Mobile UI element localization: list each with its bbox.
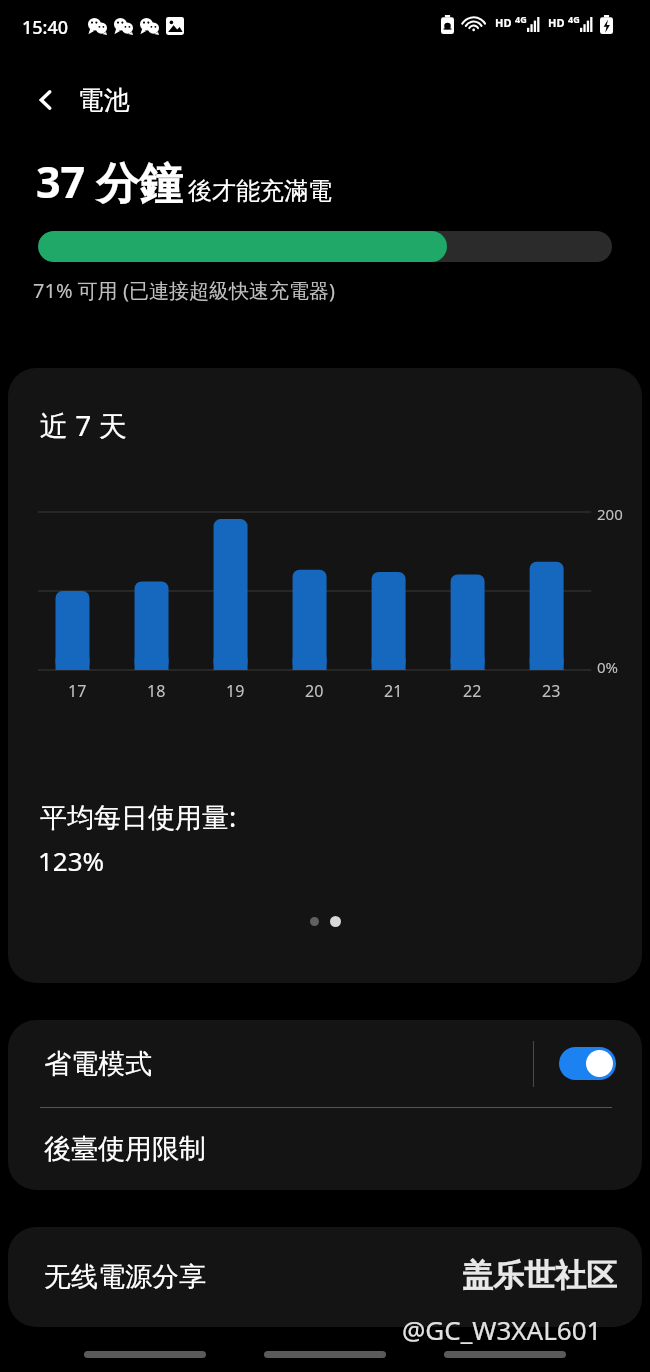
button[interactable]: 省電模式	[559, 1047, 616, 1080]
staticText: 0%	[597, 657, 619, 677]
button[interactable]: Back	[444, 1351, 566, 1358]
button[interactable]	[310, 917, 319, 926]
staticText: 18	[147, 680, 166, 702]
button[interactable]: 省電模式	[8, 1020, 642, 1107]
staticText: 20	[305, 680, 324, 702]
staticText: HD	[495, 15, 512, 30]
staticText: 4G	[568, 13, 580, 25]
staticText: 後才能充滿電	[188, 176, 332, 206]
staticText: 37 分鐘	[36, 152, 183, 211]
button[interactable]: Back	[24, 78, 68, 122]
staticText: 15:40	[22, 15, 69, 40]
staticText: 17	[68, 680, 87, 702]
button[interactable]: 无线電源分享	[8, 1227, 642, 1327]
button[interactable]: Home	[264, 1351, 386, 1358]
staticText: 无线電源分享	[44, 1260, 206, 1294]
button[interactable]	[330, 916, 341, 927]
button[interactable]: Recents	[84, 1351, 206, 1358]
staticText: 21	[384, 680, 403, 702]
staticText: 71% 可用 (已連接超級快速充電器)	[33, 277, 335, 304]
staticText: 23	[542, 680, 561, 702]
staticText: 19	[226, 680, 245, 702]
staticText: 盖乐世社区	[462, 1256, 617, 1295]
staticText: 平均每日使用量:	[40, 798, 237, 835]
button[interactable]: 近 7 天	[8, 368, 642, 983]
staticText: 後臺使用限制	[44, 1132, 206, 1166]
staticText: 電池	[78, 84, 130, 117]
staticText: 123%	[38, 843, 105, 878]
staticText: 22	[463, 680, 482, 702]
staticText: HD	[548, 15, 565, 30]
staticText: 省電模式	[44, 1047, 152, 1081]
staticText: 近 7 天	[40, 406, 127, 444]
staticText: 4G	[515, 13, 527, 25]
staticText: 200	[597, 504, 623, 524]
button[interactable]: 後臺使用限制	[8, 1108, 642, 1190]
staticText: @GC_W3XAL601	[402, 1312, 602, 1347]
